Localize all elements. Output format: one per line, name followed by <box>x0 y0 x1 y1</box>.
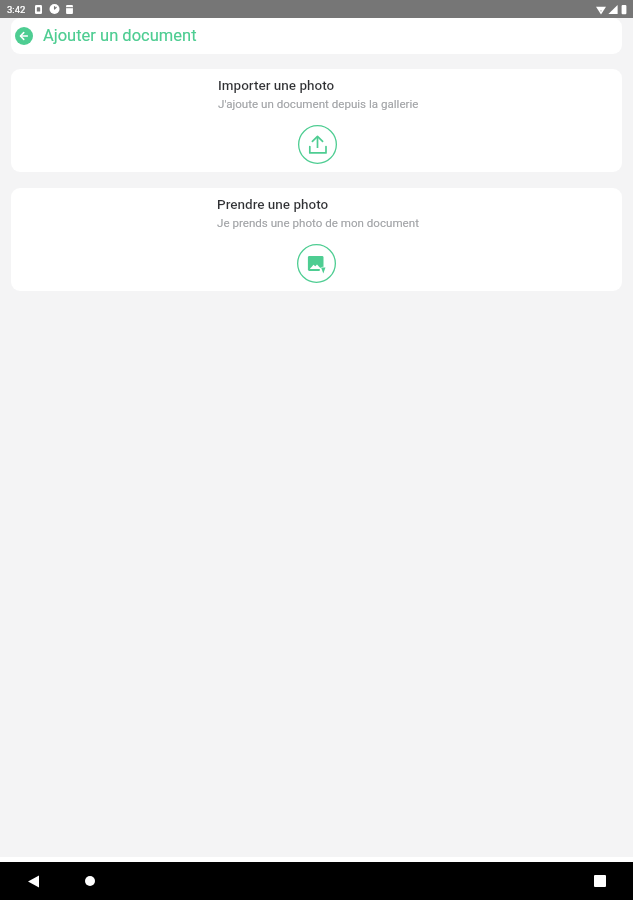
button[interactable]: Back <box>15 27 33 45</box>
button[interactable]: Back <box>28 875 39 888</box>
staticText: J'ajoute un document depuis la gallerie <box>218 97 419 111</box>
button[interactable]: Recent apps <box>594 875 606 887</box>
button[interactable]: Importer une photo <box>11 69 622 172</box>
staticText: Prendre une photo <box>217 196 329 212</box>
staticText: Je prends une photo de mon document <box>217 216 419 230</box>
button[interactable]: Home <box>85 876 95 886</box>
staticText: Ajouter un document <box>43 26 197 45</box>
button[interactable]: Prendre une photo <box>11 188 622 291</box>
staticText: 3:42 <box>7 4 26 15</box>
staticText: Importer une photo <box>218 77 335 93</box>
